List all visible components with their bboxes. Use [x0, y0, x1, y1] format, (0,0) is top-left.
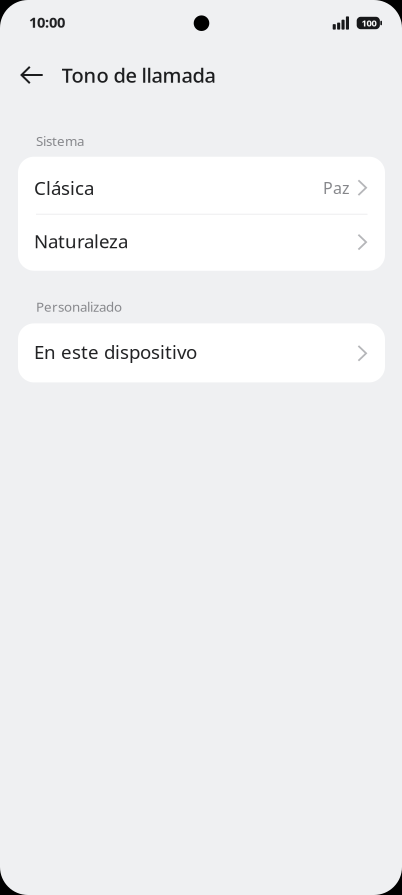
staticText: Naturaleza: [34, 228, 128, 253]
staticText: Paz: [323, 177, 350, 198]
button[interactable]: En este dispositivo: [18, 323, 385, 382]
staticText: 100: [362, 17, 377, 29]
staticText: 10:00: [29, 12, 65, 32]
button[interactable]: Naturaleza: [18, 215, 385, 271]
staticText: Tono de llamada: [61, 62, 215, 88]
staticText: Clásica: [34, 175, 94, 200]
staticText: Sistema: [36, 132, 84, 150]
staticText: En este dispositivo: [34, 339, 197, 364]
staticText: Personalizado: [36, 298, 122, 315]
button[interactable]: Atrás: [10, 53, 54, 97]
button[interactable]: Clásica: [18, 157, 385, 215]
